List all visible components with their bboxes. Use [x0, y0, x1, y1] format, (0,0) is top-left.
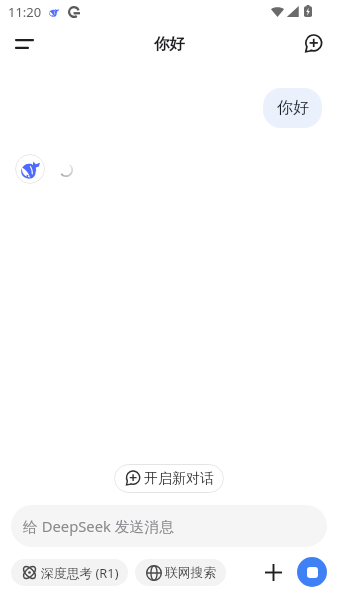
button[interactable]: 联网搜索: [135, 559, 226, 586]
staticText: 联网搜索: [165, 565, 217, 581]
staticText: 11:20: [8, 3, 42, 21]
staticText: 你好: [154, 34, 185, 54]
button[interactable]: Menu: [7, 27, 41, 61]
button[interactable]: Stop: [297, 557, 327, 587]
staticText: 给 DeepSeek 发送消息: [23, 516, 174, 536]
button[interactable]: 深度思考 (R1): [11, 559, 128, 586]
button[interactable]: 给 DeepSeek 发送消息: [11, 505, 327, 547]
button[interactable]: 你好: [263, 88, 322, 128]
button[interactable]: New chat: [296, 27, 330, 61]
staticText: 你好: [277, 98, 309, 118]
staticText: 开启新对话: [144, 470, 214, 488]
staticText: 深度思考 (R1): [41, 564, 119, 581]
button[interactable]: 开启新对话: [114, 464, 224, 493]
button[interactable]: Add attachment: [257, 556, 289, 588]
